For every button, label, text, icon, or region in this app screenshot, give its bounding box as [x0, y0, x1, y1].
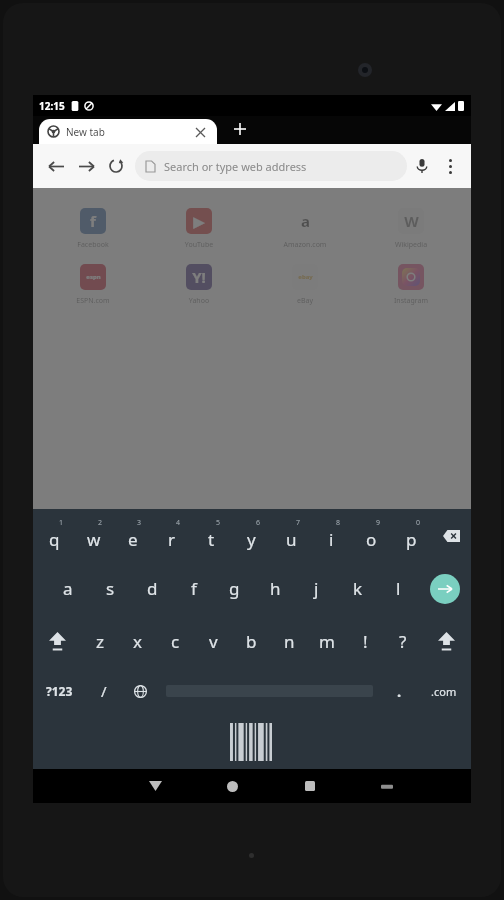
button[interactable]: 6 [231, 509, 271, 562]
staticText: j [314, 577, 319, 600]
button[interactable]: / [86, 667, 122, 715]
staticText: f [90, 211, 96, 231]
button[interactable]: d [131, 562, 173, 615]
staticText: ebay [298, 273, 313, 281]
button[interactable]: k [337, 562, 378, 615]
staticText: p [406, 528, 417, 551]
button[interactable]: s [89, 562, 131, 615]
staticText: x [133, 630, 142, 653]
staticText: f [191, 577, 197, 600]
button[interactable]: x [118, 615, 156, 667]
button[interactable]: New tab [39, 119, 217, 144]
staticText: Facebook [47, 240, 139, 250]
staticText: . [397, 681, 402, 701]
staticText: .com [431, 684, 457, 699]
button[interactable]: Shift [422, 615, 471, 667]
staticText: ?123 [46, 683, 73, 699]
button[interactable]: Backspace [431, 509, 471, 562]
staticText: Search or type web address [164, 159, 307, 174]
button[interactable]: 8 [311, 509, 351, 562]
staticText: o [366, 528, 377, 551]
button[interactable]: ?123 [33, 667, 86, 715]
button[interactable]: 9 [351, 509, 391, 562]
button[interactable]: Y! [153, 264, 245, 306]
button[interactable]: a [47, 562, 89, 615]
staticText: 6 [256, 518, 261, 528]
button[interactable]: W [365, 208, 457, 250]
button[interactable]: . [381, 667, 417, 715]
button[interactable]: Switch language [122, 667, 158, 715]
button[interactable]: z [81, 615, 118, 667]
button[interactable]: More options [437, 153, 463, 179]
button[interactable]: ebay [259, 264, 351, 306]
button[interactable]: Voice search [407, 151, 437, 181]
button[interactable]: b [232, 615, 270, 667]
button[interactable]: Space [158, 667, 381, 715]
button[interactable]: Change keyboard [348, 769, 425, 803]
button[interactable]: ▶ [153, 208, 245, 250]
staticText: New tab [66, 125, 192, 139]
button[interactable]: espn [47, 264, 139, 306]
button[interactable]: m [308, 615, 346, 667]
staticText: d [147, 577, 158, 600]
button[interactable]: ! [346, 615, 384, 667]
staticText: 0 [416, 518, 421, 528]
button[interactable]: Search or type web address [135, 151, 407, 181]
button[interactable]: h [255, 562, 296, 615]
staticText: Instagram [365, 296, 457, 306]
staticText: q [49, 528, 60, 551]
staticText: k [353, 577, 363, 600]
staticText: i [329, 528, 334, 551]
button[interactable]: Shift [33, 615, 81, 667]
staticText: 7 [296, 518, 301, 528]
button[interactable]: a [259, 208, 351, 250]
button[interactable]: Instagram [365, 264, 457, 306]
staticText: n [284, 630, 295, 653]
staticText: e [128, 528, 138, 551]
staticText: 5 [216, 518, 221, 528]
button[interactable]: Recent apps [271, 769, 348, 803]
staticText: espn [86, 273, 101, 281]
button[interactable]: Enter [419, 562, 471, 615]
staticText: Wikipedia [365, 240, 457, 250]
button[interactable]: f [47, 208, 139, 250]
staticText: 9 [376, 518, 381, 528]
staticText: r [168, 528, 176, 551]
button[interactable]: v [194, 615, 232, 667]
staticText: g [229, 577, 240, 600]
button[interactable]: 0 [391, 509, 431, 562]
button[interactable]: 4 [152, 509, 191, 562]
button[interactable]: c [156, 615, 194, 667]
button[interactable]: Reload [101, 151, 131, 181]
staticText: a [301, 211, 310, 231]
button[interactable]: n [270, 615, 308, 667]
button[interactable]: f [173, 562, 214, 615]
button[interactable]: Scan barcode [33, 715, 471, 769]
staticText: W [404, 211, 419, 231]
button[interactable]: 3 [113, 509, 152, 562]
staticText: ? [399, 630, 407, 653]
staticText: / [101, 681, 107, 701]
button[interactable]: Home [194, 769, 271, 803]
button[interactable]: 5 [191, 509, 231, 562]
staticText: ▶ [193, 213, 205, 230]
button[interactable]: l [378, 562, 419, 615]
button[interactable]: j [296, 562, 337, 615]
staticText: z [96, 630, 104, 653]
button[interactable]: Forward [71, 151, 101, 181]
button[interactable]: g [214, 562, 255, 615]
button[interactable]: New tab [229, 118, 251, 140]
staticText: c [171, 630, 180, 653]
staticText: 1 [59, 518, 64, 528]
staticText: y [247, 528, 256, 551]
button[interactable]: Hide keyboard [117, 769, 194, 803]
button[interactable]: ? [384, 615, 422, 667]
staticText: s [106, 577, 115, 600]
staticText: 2 [98, 518, 103, 528]
button[interactable]: 1 [35, 509, 74, 562]
button[interactable]: Back [41, 151, 71, 181]
button[interactable]: 7 [271, 509, 311, 562]
button[interactable]: Close tab [192, 124, 208, 140]
button[interactable]: 2 [74, 509, 113, 562]
button[interactable]: .com [417, 667, 471, 715]
